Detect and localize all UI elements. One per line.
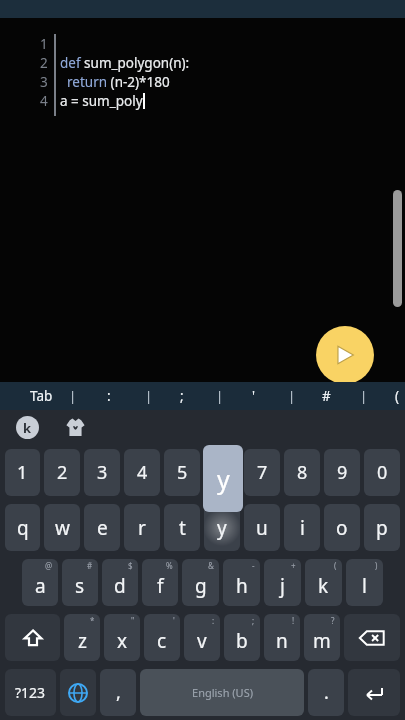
button[interactable]: r: [124, 504, 160, 551]
button[interactable]: i: [284, 504, 320, 551]
button[interactable]: y: [204, 504, 240, 551]
staticText: m: [313, 628, 331, 654]
button[interactable]: 3: [84, 449, 120, 496]
staticText: ': [252, 387, 256, 405]
staticText: 7: [257, 460, 268, 485]
button[interactable]: Change language: [60, 669, 96, 716]
staticText: k: [23, 419, 32, 437]
button[interactable]: Stickers: [64, 416, 87, 439]
staticText: :: [107, 387, 111, 405]
button[interactable]: Backspace: [344, 614, 400, 661]
button[interactable]: 8: [284, 449, 320, 496]
button[interactable]: 2: [44, 449, 80, 496]
staticText: r: [138, 515, 146, 541]
staticText: 1: [17, 460, 28, 485]
staticText: g: [195, 573, 207, 599]
button[interactable]: ?123: [5, 669, 56, 716]
button[interactable]: 4: [124, 449, 160, 496]
staticText: h: [236, 573, 248, 599]
button[interactable]: -: [223, 559, 260, 606]
button[interactable]: #: [62, 559, 98, 606]
button[interactable]: Keyboard assistant: [16, 416, 39, 439]
button[interactable]: Tab: [23, 382, 59, 410]
button[interactable]: English (US): [140, 669, 304, 716]
button[interactable]: Enter: [348, 669, 400, 716]
button[interactable]: ': [245, 382, 263, 410]
button[interactable]: |: [140, 382, 158, 410]
staticText: English (US): [192, 685, 253, 700]
button[interactable]: :: [184, 614, 220, 661]
button[interactable]: ;: [173, 382, 191, 410]
staticText: e: [97, 515, 108, 541]
button[interactable]: .: [308, 669, 344, 716]
button[interactable]: p: [364, 504, 400, 551]
staticText: |: [360, 387, 368, 405]
button[interactable]: *: [64, 614, 100, 661]
staticText: 1: [40, 35, 48, 53]
button[interactable]: ,: [100, 669, 136, 716]
staticText: d: [114, 573, 126, 599]
button[interactable]: ': [144, 614, 180, 661]
staticText: ?123: [15, 683, 46, 702]
staticText: +: [291, 560, 296, 571]
staticText: (: [334, 560, 337, 571]
button[interactable]: #: [317, 382, 335, 410]
staticText: .: [324, 680, 329, 705]
staticText: $: [128, 560, 133, 571]
button[interactable]: o: [324, 504, 360, 551]
button[interactable]: 1: [5, 449, 40, 496]
staticText: 4: [137, 460, 148, 485]
staticText: 0: [377, 460, 388, 485]
staticText: w: [55, 515, 70, 541]
staticText: *: [90, 615, 95, 626]
staticText: return (n-2)*180: [60, 73, 170, 91]
button[interactable]: Shift: [5, 614, 60, 661]
button[interactable]: ;: [224, 614, 260, 661]
staticText: &: [208, 560, 214, 571]
button[interactable]: u: [244, 504, 280, 551]
button[interactable]: $: [102, 559, 138, 606]
button[interactable]: %: [142, 559, 178, 606]
staticText: -: [252, 560, 255, 571]
button[interactable]: |: [211, 382, 229, 410]
button[interactable]: &: [182, 559, 219, 606]
button[interactable]: t: [164, 504, 200, 551]
staticText: 2: [57, 460, 68, 485]
button[interactable]: +: [264, 559, 301, 606]
button[interactable]: 9: [324, 449, 360, 496]
button[interactable]: 0: [364, 449, 400, 496]
staticText: n: [276, 628, 288, 654]
button[interactable]: (: [305, 559, 342, 606]
staticText: ,: [116, 680, 121, 705]
staticText: #: [322, 387, 331, 405]
button[interactable]: |: [355, 382, 373, 410]
staticText: l: [362, 573, 367, 599]
button[interactable]: e: [84, 504, 120, 551]
button[interactable]: |: [64, 382, 82, 410]
button[interactable]: @: [22, 559, 58, 606]
staticText: :: [212, 615, 215, 626]
staticText: ): [375, 560, 378, 571]
button[interactable]: ): [346, 559, 383, 606]
button[interactable]: 7: [244, 449, 280, 496]
button[interactable]: |: [283, 382, 301, 410]
button[interactable]: [204, 449, 240, 496]
staticText: k: [318, 573, 329, 599]
staticText: c: [157, 628, 167, 654]
staticText: #: [87, 560, 93, 571]
button[interactable]: ": [104, 614, 140, 661]
staticText: 3: [97, 460, 108, 485]
button[interactable]: !: [264, 614, 300, 661]
button[interactable]: 5: [164, 449, 200, 496]
staticText: o: [336, 515, 348, 541]
staticText: s: [75, 573, 85, 599]
button[interactable]: w: [44, 504, 80, 551]
staticText: t: [179, 515, 186, 541]
staticText: 3: [40, 73, 48, 91]
button[interactable]: q: [5, 504, 40, 551]
button[interactable]: :: [100, 382, 118, 410]
button[interactable]: (: [388, 382, 405, 410]
staticText: a: [35, 573, 46, 599]
button[interactable]: Run: [316, 326, 374, 384]
button[interactable]: ?: [304, 614, 340, 661]
